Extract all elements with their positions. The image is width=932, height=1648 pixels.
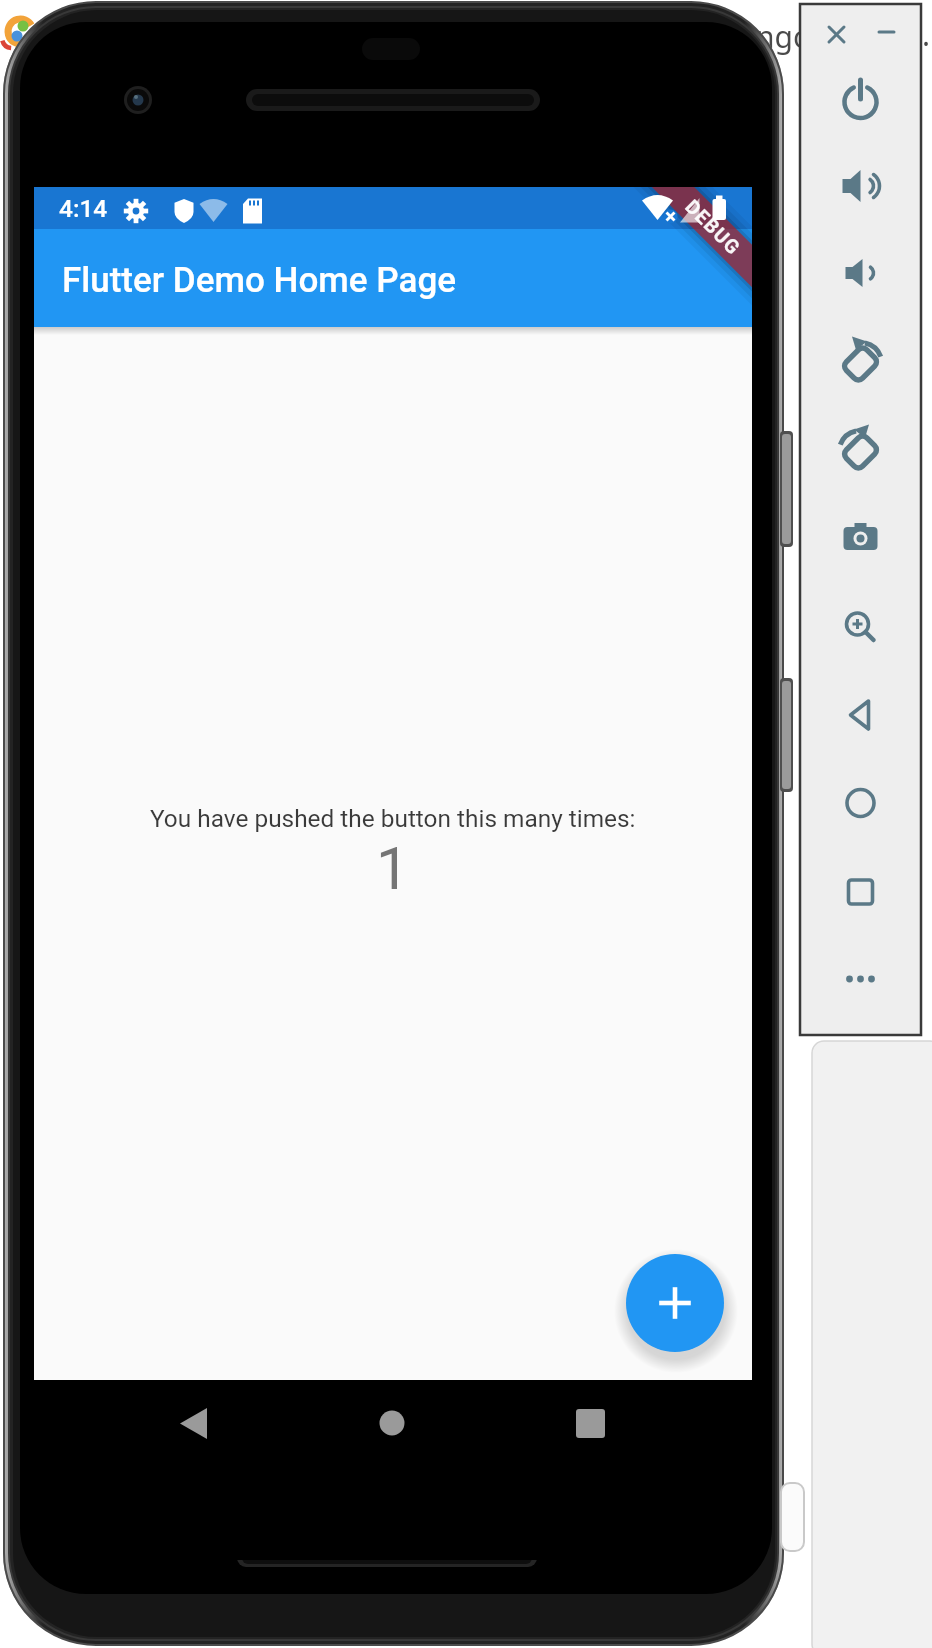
staticText: 1 (376, 834, 410, 903)
button[interactable] (833, 952, 888, 1007)
button[interactable] (833, 73, 888, 128)
button[interactable] (833, 776, 888, 831)
button[interactable] (833, 511, 888, 566)
staticText: DEBUG (680, 195, 746, 260)
staticText: . (922, 14, 931, 55)
staticText: Flutter Demo Home Page (62, 260, 457, 301)
button[interactable] (833, 159, 888, 214)
button[interactable] (862, 10, 910, 58)
button[interactable] (833, 600, 888, 655)
button[interactable] (153, 1383, 233, 1463)
button[interactable] (833, 246, 888, 301)
button[interactable] (550, 1383, 630, 1463)
button[interactable] (352, 1383, 432, 1463)
button[interactable] (627, 1255, 724, 1352)
button[interactable] (833, 688, 888, 743)
staticText: 4:14 (59, 194, 108, 223)
staticText: You have pushed the button this many tim… (150, 804, 636, 833)
button[interactable] (833, 422, 888, 477)
staticText: ngo (756, 16, 812, 57)
button[interactable] (812, 10, 860, 58)
button[interactable] (833, 333, 888, 388)
button[interactable] (833, 865, 888, 920)
